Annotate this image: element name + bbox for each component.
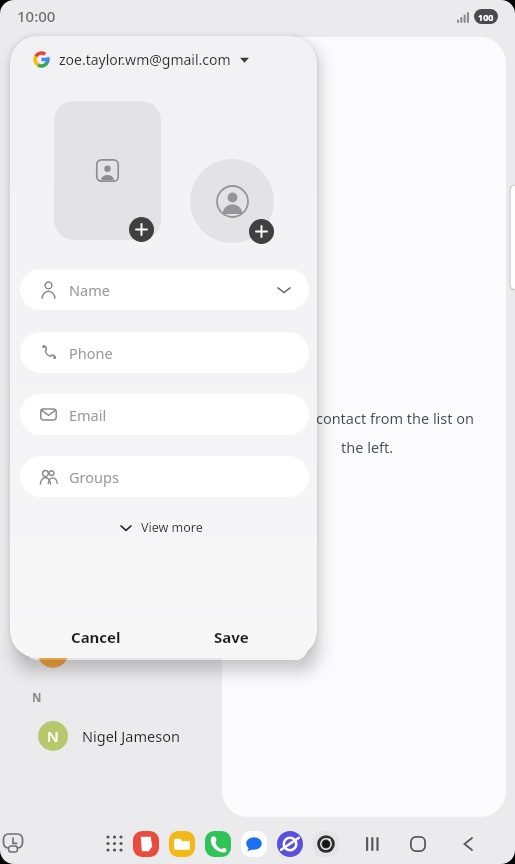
staticText: the left. <box>341 437 394 457</box>
staticText: 10:00 <box>17 6 56 26</box>
button[interactable] <box>3 833 23 853</box>
staticText: 100 <box>478 11 494 23</box>
button[interactable] <box>241 831 267 857</box>
button[interactable]: Groups <box>20 456 309 497</box>
button[interactable] <box>54 101 161 240</box>
button[interactable]: View more <box>120 519 203 536</box>
button[interactable] <box>366 837 380 851</box>
button[interactable]: zoe.taylor.wm@gmail.com <box>33 50 249 69</box>
button[interactable] <box>190 159 274 243</box>
button[interactable]: Phone <box>20 332 309 373</box>
staticText: N <box>47 726 59 746</box>
button[interactable] <box>129 217 154 242</box>
button[interactable] <box>463 837 473 851</box>
button[interactable] <box>106 835 124 853</box>
staticText: N <box>32 690 42 706</box>
button[interactable] <box>133 831 159 857</box>
button[interactable]: Name <box>20 269 309 310</box>
staticText: Email <box>69 405 107 425</box>
button[interactable]: Cancel <box>36 616 156 658</box>
staticText: Nigel Jameson <box>82 726 180 746</box>
button[interactable] <box>313 831 339 857</box>
staticText: Phone <box>69 343 113 363</box>
button[interactable] <box>169 831 195 857</box>
button[interactable]: N <box>38 721 222 751</box>
staticText: View more <box>141 519 203 536</box>
button[interactable]: Email <box>20 394 309 435</box>
staticText: Cancel <box>71 627 121 647</box>
button[interactable]: Save <box>171 616 291 658</box>
button[interactable] <box>277 831 303 857</box>
button[interactable] <box>249 219 274 244</box>
staticText: Save <box>214 627 249 647</box>
button[interactable] <box>205 831 231 857</box>
staticText: Select a contact from the list on <box>260 408 475 428</box>
button[interactable] <box>410 836 426 852</box>
staticText: Groups <box>69 467 119 487</box>
staticText: Name <box>69 280 110 300</box>
staticText: zoe.taylor.wm@gmail.com <box>59 50 231 69</box>
